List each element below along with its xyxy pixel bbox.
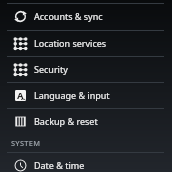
button[interactable]: Backup & reset bbox=[0, 109, 172, 134]
staticText: Accounts & sync bbox=[34, 10, 103, 22]
staticText: Backup & reset bbox=[34, 115, 98, 127]
staticText: Location services bbox=[34, 37, 107, 49]
button[interactable]: Location services bbox=[0, 31, 172, 56]
staticText: Security bbox=[34, 63, 68, 75]
button[interactable]: Date & time bbox=[0, 153, 172, 172]
button[interactable]: A bbox=[0, 83, 172, 108]
staticText: Language & input bbox=[34, 89, 110, 101]
staticText: Date & time bbox=[34, 159, 85, 171]
button[interactable]: Security bbox=[0, 57, 172, 82]
staticText: A bbox=[17, 89, 24, 101]
button[interactable]: Accounts & sync bbox=[0, 4, 172, 29]
staticText: SYSTEM bbox=[11, 138, 41, 148]
